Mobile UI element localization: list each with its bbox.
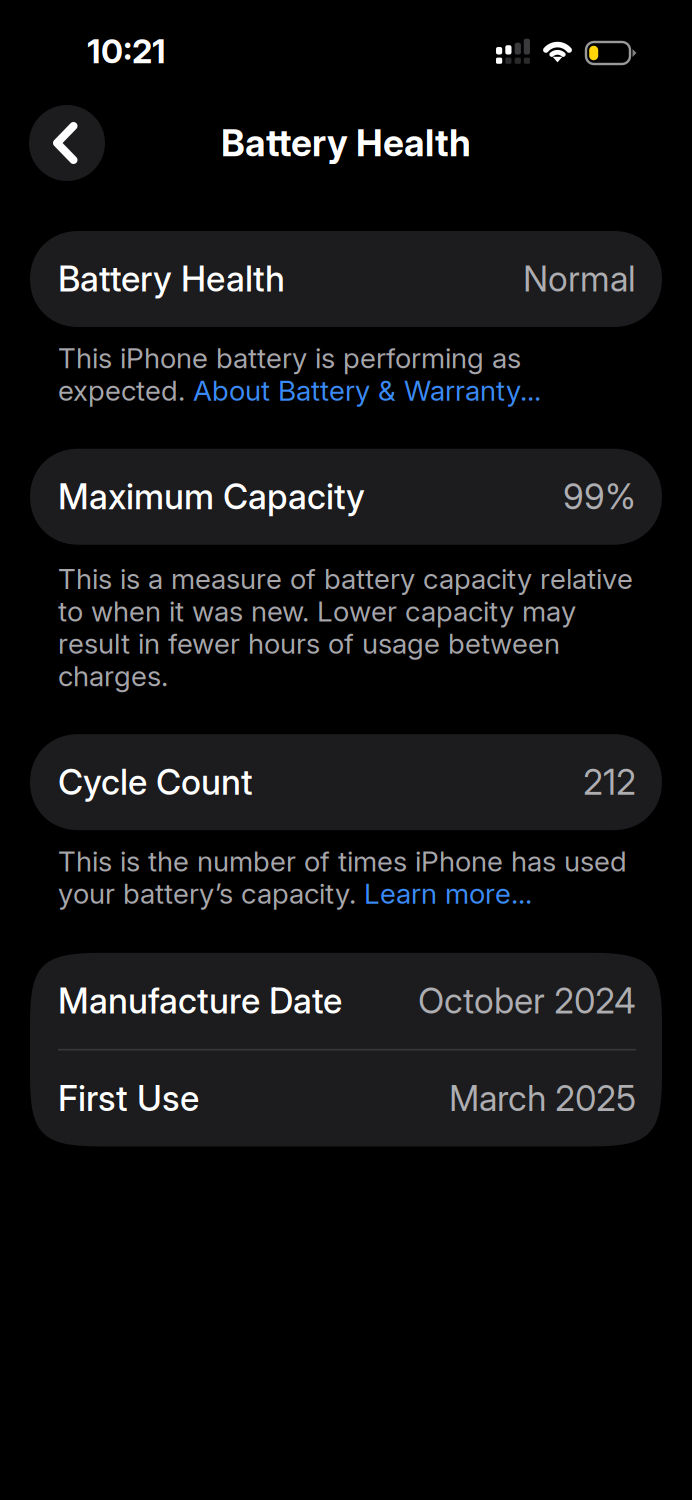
staticText: This is a measure of battery capacity re… [58,563,633,595]
staticText: This is the number of times iPhone has u… [58,845,627,877]
staticText: result in fewer hours of usage between [58,627,560,660]
staticText: Normal [523,258,636,300]
staticText: Battery Health [221,121,471,165]
button[interactable]: Cycle Count [30,734,662,830]
staticText: 10:21 [87,31,166,71]
staticText: expected. [58,374,193,407]
button[interactable]: Manufacture Date [30,953,662,1049]
staticText: Learn more... [364,877,532,910]
button[interactable]: Battery Health [30,231,662,327]
button[interactable]: Maximum Capacity [30,449,662,545]
staticText: October 2024 [418,980,636,1022]
staticText: your battery’s capacity. [58,877,364,910]
staticText: 99% [563,476,636,518]
staticText: to when it was new. Lower capacity may [58,595,576,627]
staticText: March 2025 [449,1077,636,1119]
staticText: About Battery & Warranty... [193,374,541,407]
staticText: This iPhone battery is performing as [58,342,521,374]
staticText: Cycle Count [58,761,253,803]
staticText: charges. [58,660,168,692]
staticText: Manufacture Date [58,980,342,1022]
staticText: 212 [583,761,636,803]
staticText: Battery Health [58,258,285,300]
button[interactable]: First Use [30,1050,662,1146]
button[interactable]: Back [29,105,105,181]
staticText: First Use [58,1077,199,1119]
staticText: Maximum Capacity [58,476,365,518]
